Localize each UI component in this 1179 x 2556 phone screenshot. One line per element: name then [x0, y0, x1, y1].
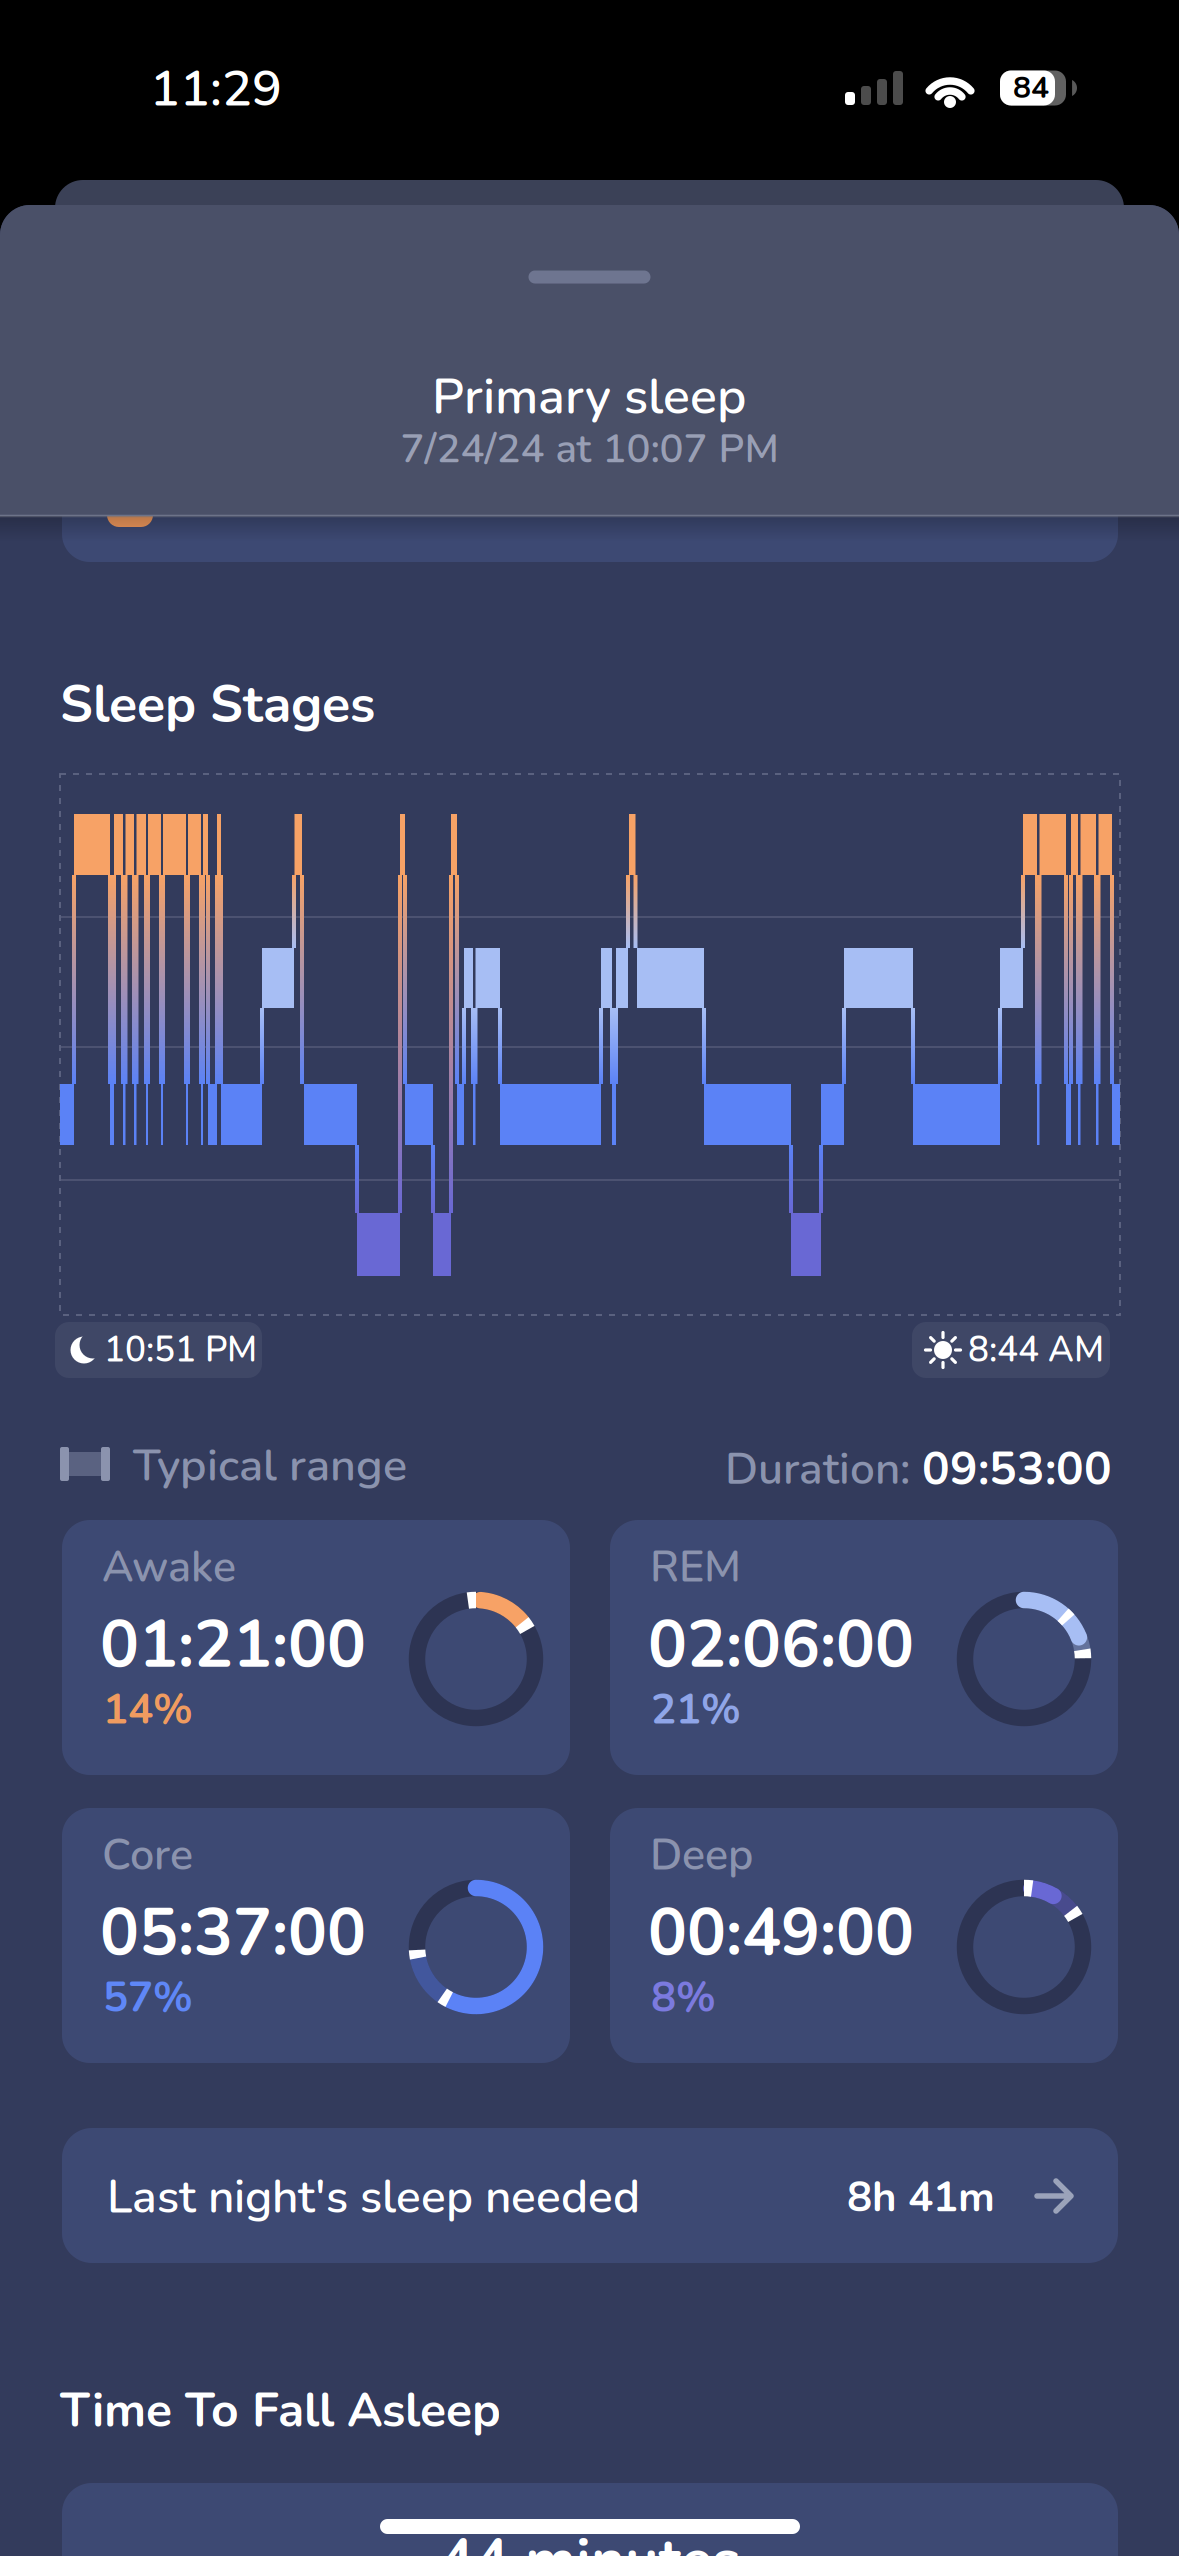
staticText: 7/24/24 at 10:07 PM	[400, 422, 778, 476]
staticText: 44 minutes	[439, 2520, 740, 2556]
staticText: Awake	[102, 1538, 236, 1597]
staticText: Duration:	[725, 1439, 922, 1499]
staticText: 09:53:00	[922, 1438, 1112, 1501]
staticText: 14%	[103, 1681, 193, 1738]
staticText: Sleep Stages	[60, 669, 375, 740]
staticText: 8h 41m	[847, 2169, 995, 2226]
staticText: Primary sleep	[432, 363, 747, 431]
staticText: Time To Fall Asleep	[60, 2378, 501, 2443]
staticText: Last night's sleep needed	[107, 2166, 640, 2229]
staticText: 8%	[651, 1969, 716, 2026]
staticText: Deep	[650, 1826, 753, 1885]
staticText: 8:44 AM	[968, 1326, 1104, 1374]
staticText: 21%	[651, 1681, 741, 1738]
staticText: 01:21:00	[100, 1601, 366, 1690]
staticText: 00:49:00	[648, 1889, 914, 1978]
staticText: 84	[1013, 67, 1049, 108]
staticText: 11:29	[150, 55, 282, 123]
staticText: 10:51 PM	[104, 1326, 257, 1374]
staticText: 05:37:00	[100, 1889, 366, 1978]
staticText: Typical range	[133, 1435, 407, 1496]
staticText: 02:06:00	[648, 1601, 914, 1690]
staticText: REM	[650, 1538, 741, 1597]
staticText: 57%	[103, 1969, 193, 2026]
staticText: Core	[102, 1826, 193, 1885]
button[interactable]: Last night's sleep needed	[62, 2128, 1118, 2263]
